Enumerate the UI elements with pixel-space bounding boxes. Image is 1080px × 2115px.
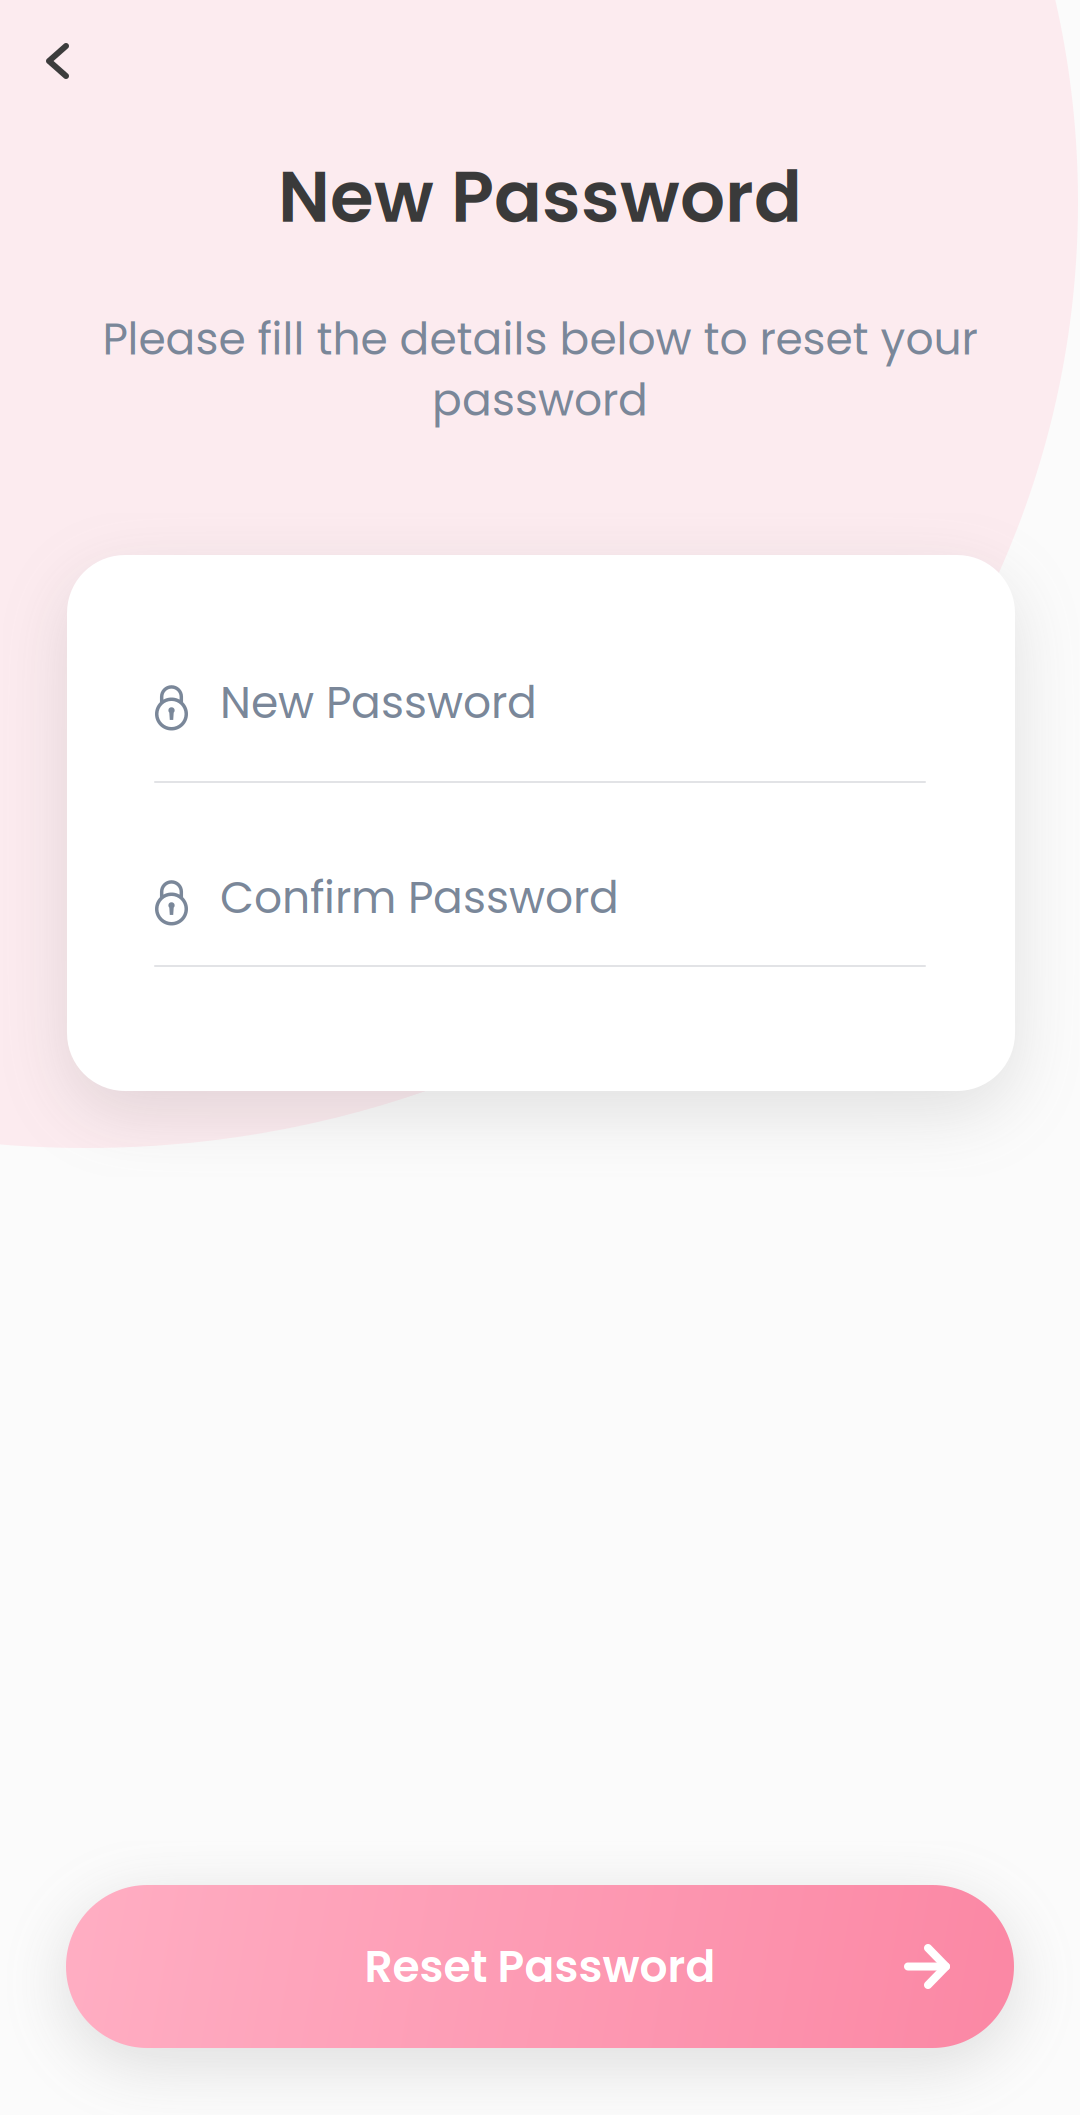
staticText: Confirm Password	[220, 867, 619, 928]
staticText: Reset Password	[364, 1936, 715, 1997]
staticText: password	[432, 369, 648, 431]
button[interactable]: Reset Password	[66, 1885, 1014, 2048]
button[interactable]: Back	[0, 0, 150, 122]
staticText: New Password	[220, 672, 537, 733]
staticText: New Password	[278, 147, 802, 246]
staticText: Please fill the details below to reset y…	[102, 308, 977, 370]
